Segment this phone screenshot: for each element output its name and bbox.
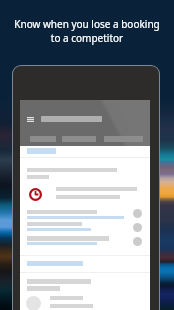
staticText: Know when you lose a booking to a compet…: [14, 17, 160, 45]
button[interactable]: Open navigation menu: [23, 112, 38, 127]
